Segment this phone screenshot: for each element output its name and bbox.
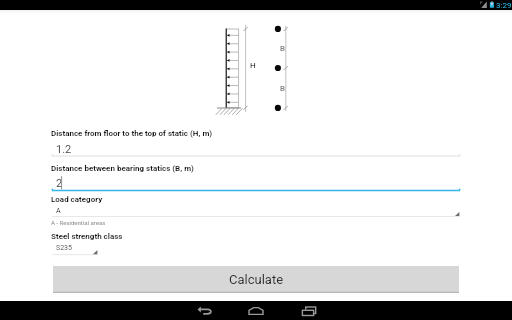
button[interactable]: Recent apps bbox=[284, 301, 332, 320]
button[interactable] bbox=[52, 138, 460, 158]
staticText: 2 bbox=[56, 177, 63, 190]
staticText: H bbox=[250, 61, 256, 70]
staticText: 3:29 bbox=[496, 1, 512, 10]
staticText: S235 bbox=[56, 244, 72, 252]
button[interactable]: Calculate bbox=[53, 266, 459, 293]
staticText: A - Residential areas bbox=[51, 219, 106, 226]
button[interactable]: Home bbox=[232, 301, 280, 320]
staticText: 1.2 bbox=[56, 143, 72, 156]
button[interactable] bbox=[52, 172, 460, 192]
staticText: B bbox=[280, 84, 286, 93]
button[interactable] bbox=[52, 242, 104, 256]
staticText: Steel strength class bbox=[51, 232, 123, 241]
staticText: A bbox=[56, 207, 61, 215]
staticText: B bbox=[280, 44, 286, 53]
staticText: Distance from floor to the top of static… bbox=[51, 129, 213, 138]
button[interactable] bbox=[52, 203, 460, 217]
button[interactable]: Back bbox=[181, 301, 229, 320]
staticText: Distance between bearing statics (B, m) bbox=[51, 164, 194, 173]
staticText: Calculate bbox=[229, 272, 284, 287]
staticText: Load category bbox=[51, 195, 103, 204]
